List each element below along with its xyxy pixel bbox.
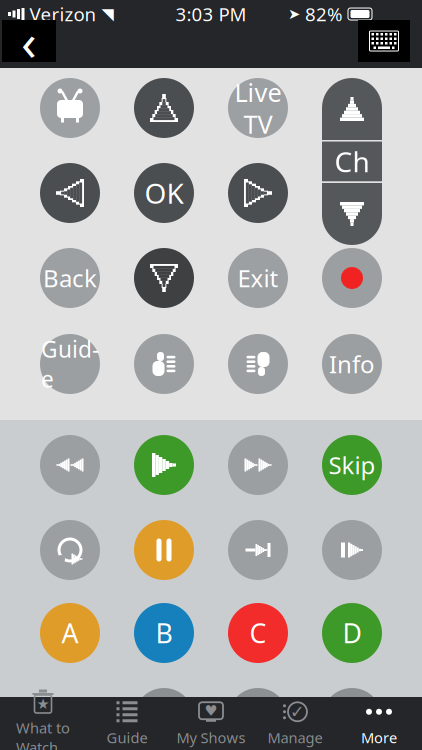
button[interactable]: What to Watch	[1, 697, 85, 749]
staticText: A	[61, 615, 78, 651]
button[interactable]: Replay	[40, 520, 100, 580]
staticText: 82%	[305, 2, 343, 26]
staticText: ✓	[290, 702, 305, 722]
button[interactable]: Exit	[228, 248, 288, 308]
staticText: Guide	[106, 728, 147, 747]
staticText: Verizon	[29, 2, 96, 26]
button[interactable]: Back	[40, 248, 100, 308]
button[interactable]: Info	[322, 334, 382, 394]
button[interactable]: Play	[134, 435, 194, 495]
button[interactable]: More	[337, 697, 421, 749]
staticText: Ch	[334, 143, 369, 180]
button[interactable]: C	[228, 603, 288, 663]
button[interactable]: Live TV	[228, 78, 288, 138]
staticText: D	[342, 615, 361, 651]
button[interactable]: TiVo	[40, 78, 100, 138]
button[interactable]: Advance	[228, 520, 288, 580]
button[interactable]: Slow Motion	[322, 520, 382, 580]
staticText: B	[155, 615, 172, 651]
button[interactable]: OK	[134, 163, 194, 223]
staticText: OK	[144, 174, 183, 212]
button[interactable]: Fast Forward	[228, 435, 288, 495]
staticText: Manage	[267, 728, 322, 747]
button[interactable]: My Shows	[169, 697, 253, 749]
staticText: Back	[43, 262, 97, 294]
staticText: Guide	[41, 334, 99, 394]
button[interactable]: Manage	[253, 697, 337, 749]
button[interactable]: Channel Up	[322, 78, 382, 140]
staticText: ♥	[204, 702, 217, 719]
staticText: ★	[36, 696, 49, 712]
staticText: What to Watch	[16, 718, 70, 750]
staticText: C	[249, 615, 266, 651]
staticText: Live	[234, 75, 281, 109]
staticText: More	[361, 728, 397, 747]
staticText: Info	[329, 348, 375, 380]
button[interactable]: Up	[134, 78, 194, 138]
button[interactable]: Guide	[85, 697, 169, 749]
button[interactable]: Left	[40, 163, 100, 223]
staticText: ◥	[101, 5, 113, 23]
staticText: ‹	[21, 7, 37, 75]
button[interactable]: B	[134, 603, 194, 663]
button[interactable]: Keyboard	[358, 20, 410, 62]
button[interactable]: Record	[322, 248, 382, 308]
button[interactable]: Rewind	[40, 435, 100, 495]
staticText: Exit	[237, 262, 278, 294]
staticText: 3:03 PM	[175, 2, 246, 26]
button[interactable]: D	[322, 603, 382, 663]
button[interactable]: Back	[2, 20, 56, 62]
button[interactable]: Pause	[134, 520, 194, 580]
button[interactable]: Right	[228, 163, 288, 223]
staticText: Skip	[328, 449, 375, 481]
button[interactable]: Thumbs Up	[228, 334, 288, 394]
button[interactable]: A	[40, 603, 100, 663]
button[interactable]: Thumbs Down	[134, 334, 194, 394]
button[interactable]: Skip	[322, 435, 382, 495]
staticText: TV	[243, 107, 272, 141]
button[interactable]: Down	[134, 248, 194, 308]
staticText: ➤	[288, 6, 300, 22]
staticText: My Shows	[176, 728, 245, 747]
button[interactable]: Channel Down	[322, 183, 382, 245]
button[interactable]: Guide	[40, 334, 100, 394]
